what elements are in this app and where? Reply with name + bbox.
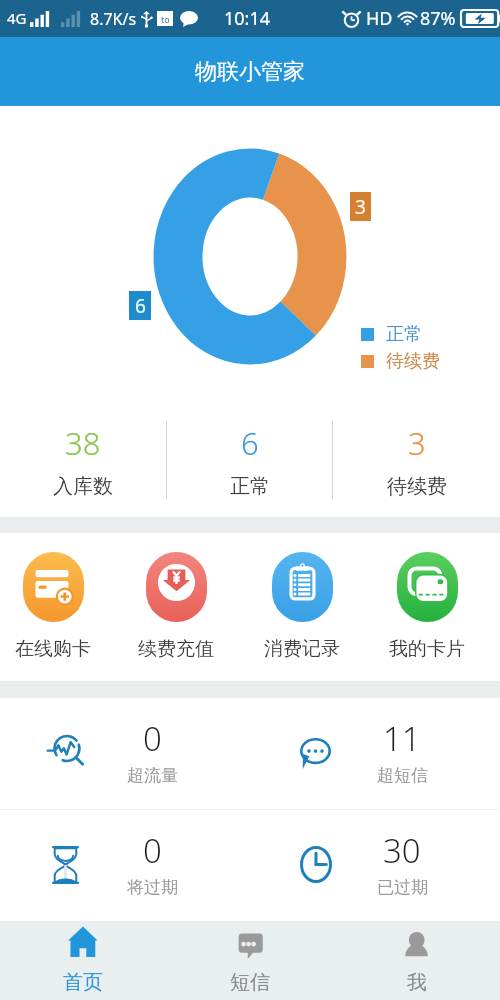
staticText: 将过期 [127,877,178,898]
staticText: 待续费 [386,350,440,373]
button[interactable]: 38 [0,421,166,499]
staticText: 短信 [230,970,270,995]
staticText: to [161,13,170,25]
staticText: 消费记录 [264,637,340,661]
staticText: 正常 [386,323,422,346]
staticText: 物联小管家 [195,58,305,86]
staticText: 10:14 [224,6,271,31]
staticText: 38 [65,422,101,464]
staticText: 超流量 [127,765,178,786]
button[interactable]: Profile [333,921,500,1000]
staticText: 30 [383,828,421,873]
staticText: 4G [7,8,27,28]
staticText: 0 [143,716,162,761]
button[interactable]: 在线购卡 [8,547,98,664]
button[interactable]: 0 [0,698,250,809]
staticText: 超短信 [377,765,428,786]
button[interactable]: 续费充值 [131,547,221,664]
staticText: 87% [420,6,456,31]
staticText: 11 [383,716,421,761]
staticText: 首页 [63,970,103,995]
button[interactable]: 3 [333,421,500,499]
button[interactable]: 消费记录 [257,547,347,664]
button[interactable]: Home [0,921,166,1000]
staticText: 续费充值 [138,637,214,661]
staticText: 待续费 [387,474,447,499]
button[interactable]: 正常 [361,321,422,347]
staticText: 我 [407,970,427,995]
staticText: 3 [408,422,426,464]
staticText: 入库数 [53,474,113,499]
staticText: 6 [241,422,259,464]
staticText: 6 [135,293,146,319]
staticText: 我的卡片 [389,637,465,661]
staticText: HD [366,6,393,31]
button[interactable]: 6 [166,421,333,499]
staticText: 在线购卡 [15,637,91,661]
staticText: 0 [143,828,162,873]
button[interactable]: 待续费 [361,348,440,374]
staticText: 3 [355,194,366,220]
button[interactable]: 11 [250,698,500,809]
button[interactable]: 30 [250,810,500,921]
button[interactable]: Messages [166,921,333,1000]
button[interactable]: 我的卡片 [382,547,472,664]
staticText: 已过期 [377,877,428,898]
button[interactable]: 0 [0,810,250,921]
staticText: 正常 [230,474,270,499]
staticText: 8.7K/s [90,8,137,30]
